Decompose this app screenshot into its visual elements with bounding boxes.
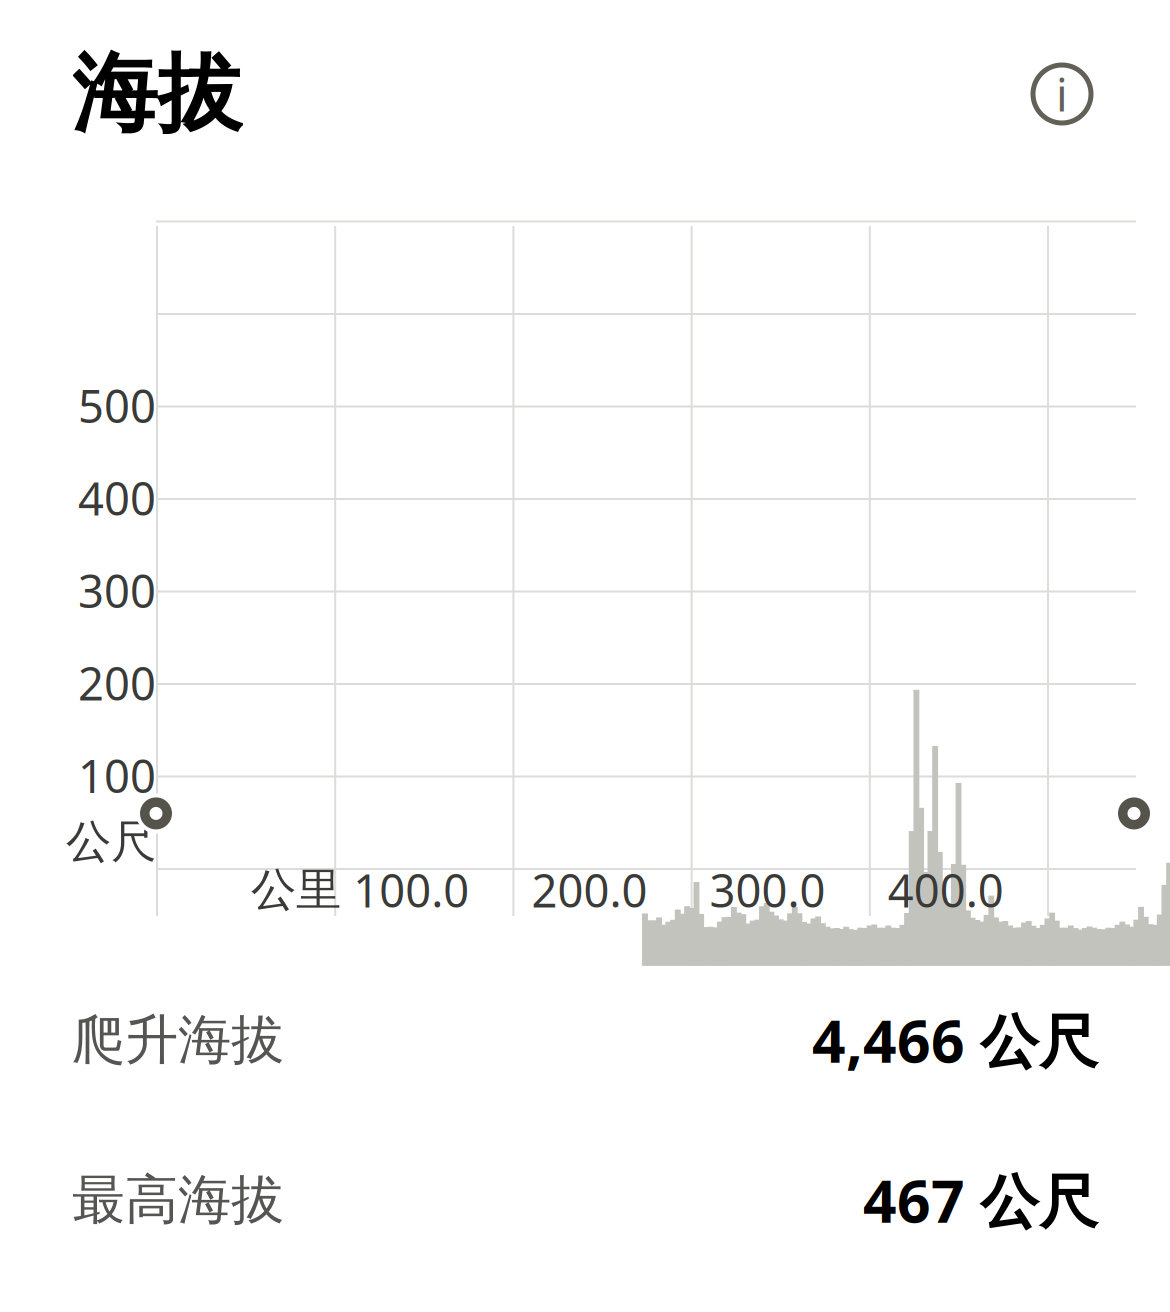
staticText: 467 公尺 xyxy=(863,1161,1098,1239)
staticText: 200.0 xyxy=(531,860,647,920)
staticText: 爬升海拔 xyxy=(72,1007,284,1073)
staticText: 500 xyxy=(78,375,156,436)
button[interactable]: 關於海拔資訊 xyxy=(1026,58,1098,130)
staticText: 100 xyxy=(78,745,156,806)
staticText: 4,466 公尺 xyxy=(812,1001,1098,1079)
staticText: 公尺 xyxy=(66,814,156,870)
button[interactable]: 最高海拔 xyxy=(0,1150,1170,1250)
staticText: 最高海拔 xyxy=(72,1167,284,1233)
button[interactable]: 爬升海拔 xyxy=(0,990,1170,1090)
staticText: 400.0 xyxy=(888,860,1004,920)
staticText: 海拔 xyxy=(72,42,242,146)
staticText: i xyxy=(1056,64,1068,124)
staticText: 300.0 xyxy=(710,860,826,920)
staticText: 100.0 xyxy=(353,860,469,920)
staticText: 400 xyxy=(78,468,156,528)
staticText: 300 xyxy=(78,560,156,621)
staticText: 200 xyxy=(78,653,156,713)
staticText: 公里 xyxy=(251,862,341,918)
